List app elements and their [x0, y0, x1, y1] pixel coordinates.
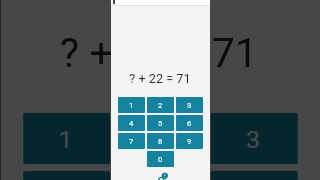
button[interactable]: 9 — [176, 133, 203, 149]
staticText: 9 — [187, 137, 192, 146]
button[interactable]: 2 — [117, 113, 204, 164]
staticText: 3 — [187, 101, 192, 110]
staticText: 3 — [246, 126, 262, 155]
button[interactable]: 1 — [23, 113, 110, 164]
staticText: 8 — [158, 137, 163, 146]
button[interactable]: 4 — [118, 115, 145, 131]
button[interactable]: 7 — [118, 133, 145, 149]
staticText: 7 — [129, 137, 134, 146]
staticText: ? + 22 = 71 — [129, 71, 191, 86]
button[interactable]: 3 — [211, 113, 298, 164]
staticText: 2 — [158, 101, 163, 110]
button[interactable]: Hint — [154, 168, 169, 180]
button[interactable]: 5 — [147, 115, 174, 131]
staticText: 2 — [152, 126, 169, 155]
button[interactable]: 5 — [117, 171, 204, 180]
staticText: 1 — [59, 126, 75, 155]
button[interactable]: 0 — [147, 151, 174, 167]
button[interactable]: 2 — [147, 97, 174, 113]
button[interactable]: 1 — [118, 97, 145, 113]
button[interactable]: 6 — [176, 115, 203, 131]
button[interactable]: 3 — [176, 97, 203, 113]
staticText: 5 — [158, 119, 163, 128]
staticText: 6 — [187, 119, 192, 128]
staticText: 1 — [129, 101, 134, 110]
staticText: 0 — [158, 155, 163, 164]
button[interactable]: 8 — [147, 133, 174, 149]
staticText: 4 — [129, 119, 134, 128]
staticText: ? + 22 = 71 — [59, 29, 259, 77]
